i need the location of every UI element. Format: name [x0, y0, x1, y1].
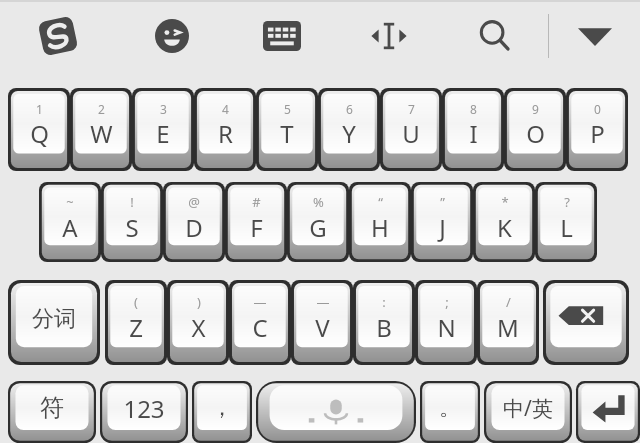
button[interactable] [576, 381, 640, 443]
button[interactable]: ) [167, 280, 229, 365]
staticText: ? [564, 193, 570, 211]
button[interactable]: / [477, 280, 539, 365]
staticText: 8 [470, 101, 477, 117]
button[interactable]: 中/英 [484, 381, 572, 443]
staticText: A [62, 211, 78, 244]
staticText: Z [129, 311, 143, 344]
other: Backspace [543, 280, 629, 365]
button[interactable]: 8 [442, 88, 504, 171]
staticText: — [316, 293, 330, 311]
staticText: ” [440, 193, 445, 211]
staticText: Y [342, 117, 356, 150]
staticText: 3 [160, 101, 167, 117]
staticText: N [437, 311, 456, 344]
button[interactable]: 4 [194, 88, 256, 171]
button[interactable]: # [225, 182, 287, 262]
button[interactable]: 5 [256, 88, 318, 171]
button[interactable]: 。 [420, 381, 480, 443]
staticText: “ [378, 193, 383, 211]
staticText: 0 [594, 101, 601, 117]
staticText: @ [188, 193, 200, 211]
button[interactable]: Hide keyboard [549, 0, 640, 72]
button[interactable]: : [353, 280, 415, 365]
staticText: / [506, 293, 511, 311]
button[interactable]: * [473, 182, 535, 262]
button[interactable]: ， [192, 381, 252, 443]
staticText: O [526, 117, 545, 150]
staticText: 123 [123, 392, 165, 425]
button[interactable]: % [287, 182, 349, 262]
staticText: 1 [36, 101, 43, 117]
staticText: 5 [284, 101, 291, 117]
staticText: ; [445, 293, 449, 311]
staticText: G [309, 211, 327, 244]
button[interactable]: “ [349, 182, 411, 262]
button[interactable]: 符 [8, 381, 96, 443]
staticText: 7 [408, 101, 415, 117]
staticText: 。 [439, 394, 461, 422]
button[interactable]: ? [535, 182, 597, 262]
staticText: F [250, 211, 263, 244]
staticText: ( [134, 293, 138, 311]
button[interactable]: — [291, 280, 353, 365]
staticText: H [371, 211, 389, 244]
staticText: % [313, 193, 324, 211]
staticText: 分词 [32, 305, 76, 333]
button[interactable]: — [229, 280, 291, 365]
staticText: 6 [346, 101, 353, 117]
staticText: ， [211, 394, 233, 422]
button[interactable]: 分词 [8, 280, 100, 365]
staticText: ~ [66, 193, 74, 211]
staticText: L [560, 211, 573, 244]
staticText: M [497, 311, 519, 344]
button[interactable]: 0 [566, 88, 628, 171]
staticText: X [191, 311, 206, 344]
staticText: : [382, 293, 386, 311]
staticText: P [590, 117, 605, 150]
staticText: 中/英 [503, 394, 553, 423]
staticText: # [252, 193, 261, 211]
staticText: E [156, 117, 170, 150]
button[interactable]: 6 [318, 88, 380, 171]
staticText: 符 [40, 393, 64, 423]
staticText: C [252, 311, 268, 344]
button[interactable]: ” [411, 182, 473, 262]
button[interactable]: @ [163, 182, 225, 262]
staticText: V [315, 311, 330, 344]
button[interactable] [543, 280, 629, 365]
button[interactable]: Keyboard layout [228, 0, 336, 72]
other: Space [256, 381, 416, 443]
staticText: 9 [532, 101, 539, 117]
staticText: Q [30, 117, 49, 150]
button[interactable]: 1 [8, 88, 70, 171]
staticText: W [90, 117, 113, 150]
staticText: K [497, 211, 512, 244]
button[interactable]: Emoji [116, 0, 228, 72]
button[interactable]: 9 [504, 88, 566, 171]
button[interactable]: Sogou input method [0, 0, 116, 72]
staticText: S [125, 211, 139, 244]
button[interactable]: 3 [132, 88, 194, 171]
button[interactable]: Move cursor [336, 0, 442, 72]
button[interactable]: ! [101, 182, 163, 262]
staticText: ! [130, 193, 134, 211]
button[interactable]: ; [415, 280, 477, 365]
staticText: D [185, 211, 203, 244]
other: Enter [576, 381, 640, 443]
button[interactable]: 123 [100, 381, 188, 443]
staticText: T [280, 117, 294, 150]
staticText: 4 [222, 101, 229, 117]
button[interactable]: ( [105, 280, 167, 365]
staticText: J [439, 211, 446, 244]
button[interactable]: 2 [70, 88, 132, 171]
staticText: U [402, 117, 420, 150]
button[interactable]: 7 [380, 88, 442, 171]
staticText: ) [197, 293, 201, 311]
staticText: R [218, 117, 233, 150]
staticText: * [501, 193, 509, 211]
staticText: I [469, 117, 478, 150]
button[interactable]: ~ [39, 182, 101, 262]
button[interactable] [256, 381, 416, 443]
staticText: 2 [98, 101, 105, 117]
button[interactable]: Search [442, 0, 548, 72]
